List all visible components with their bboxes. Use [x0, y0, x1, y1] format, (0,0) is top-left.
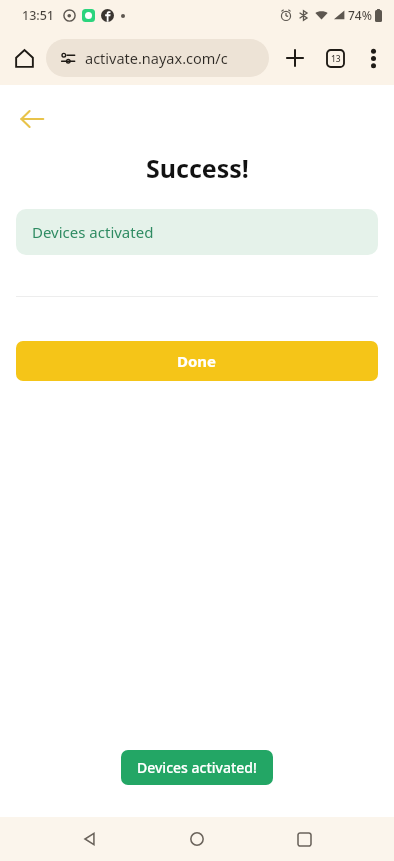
button[interactable]: Recent apps	[284, 819, 324, 859]
staticText: 13	[331, 53, 341, 65]
staticText: Done	[177, 351, 217, 371]
button[interactable]: Home	[6, 40, 42, 76]
button[interactable]: Tabs: 13 open	[318, 41, 352, 75]
button[interactable]: Done	[16, 341, 378, 381]
staticText: Devices activated!	[137, 758, 257, 777]
staticText: activate.nayax.com/c	[85, 48, 228, 68]
button[interactable]: More options	[356, 41, 390, 75]
button[interactable]: Home	[177, 819, 217, 859]
staticText: Devices activated	[32, 222, 154, 242]
button[interactable]: activate.nayax.com/c	[46, 39, 269, 77]
button[interactable]: Back	[12, 99, 52, 139]
staticText: 13:51	[22, 7, 55, 24]
button[interactable]: New tab	[278, 41, 312, 75]
staticText: 74%	[348, 7, 372, 23]
staticText: Success!	[146, 151, 249, 185]
button[interactable]: Back	[70, 819, 110, 859]
button[interactable]: Devices activated	[16, 209, 378, 255]
